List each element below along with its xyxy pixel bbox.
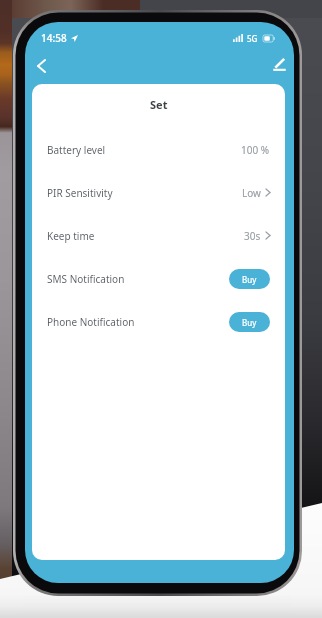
staticText: Battery level <box>47 143 106 157</box>
button[interactable]: Back <box>28 53 54 79</box>
staticText: Phone Notification <box>47 315 135 329</box>
button[interactable]: PIR Sensitivity <box>32 171 285 214</box>
staticText: Buy <box>242 317 257 328</box>
staticText: 30s <box>244 229 261 243</box>
staticText: 100 % <box>241 143 270 157</box>
button[interactable]: Battery level <box>32 128 285 171</box>
staticText: Set <box>150 97 168 112</box>
staticText: Keep time <box>47 229 95 243</box>
staticText: SMS Notification <box>47 272 125 286</box>
staticText: Low <box>242 186 261 200</box>
button[interactable]: Edit <box>266 51 292 77</box>
staticText: PIR Sensitivity <box>47 186 113 200</box>
button[interactable]: Buy <box>229 312 270 332</box>
button[interactable]: Buy <box>229 269 270 289</box>
button[interactable]: Keep time <box>32 214 285 257</box>
button[interactable]: SMS Notification <box>32 257 285 300</box>
staticText: Buy <box>242 274 257 285</box>
button[interactable]: Phone Notification <box>32 300 285 343</box>
staticText: 14:58 <box>41 31 67 45</box>
staticText: 5G <box>247 33 258 44</box>
